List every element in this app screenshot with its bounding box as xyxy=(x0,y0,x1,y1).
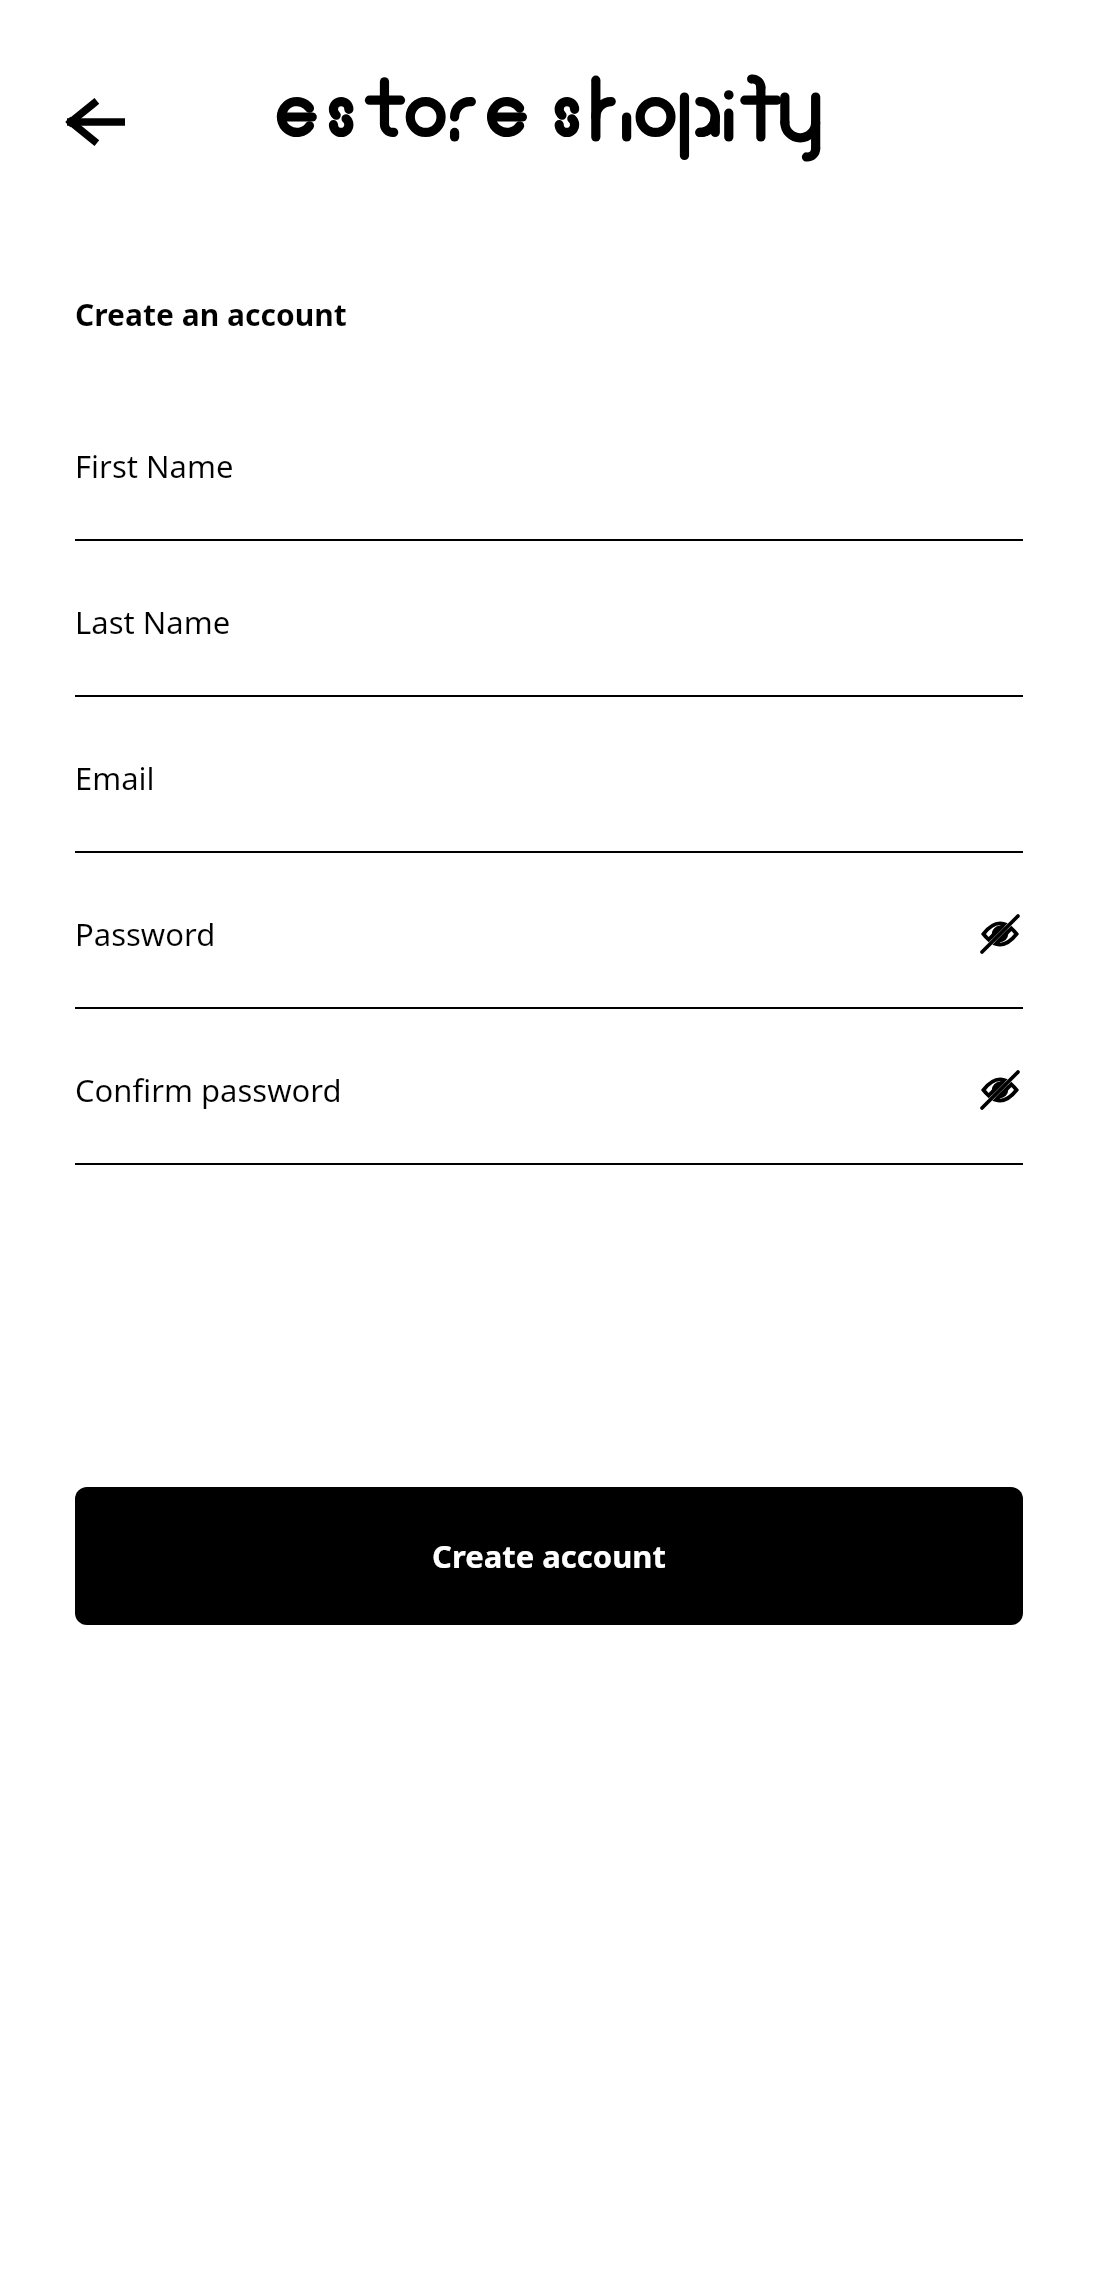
button[interactable]: Confirm password xyxy=(75,1009,1023,1165)
staticText: Create account xyxy=(432,1535,666,1577)
staticText: Confirm password xyxy=(75,1069,342,1111)
staticText: Create an account xyxy=(75,294,347,335)
staticText: Email xyxy=(75,757,155,799)
button[interactable]: Last Name xyxy=(75,541,1023,697)
staticText: Password xyxy=(75,913,216,955)
button[interactable]: First Name xyxy=(75,385,1023,541)
button[interactable]: Password xyxy=(75,853,1023,1009)
button[interactable]: Show password xyxy=(977,911,1023,957)
button[interactable]: Back xyxy=(48,76,144,168)
staticText: First Name xyxy=(75,445,234,487)
button[interactable]: Email xyxy=(75,697,1023,853)
staticText: Last Name xyxy=(75,601,231,643)
button[interactable]: Show password xyxy=(977,1067,1023,1113)
button[interactable]: Create account xyxy=(75,1487,1023,1625)
